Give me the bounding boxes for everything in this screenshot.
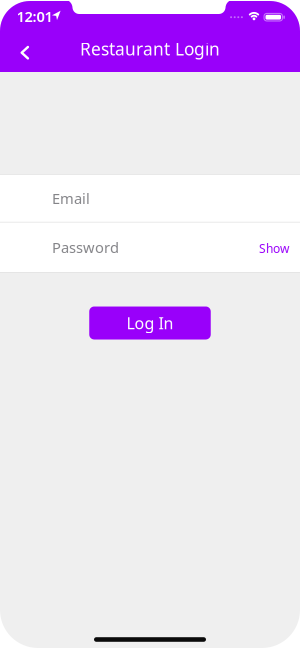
button[interactable]: Email	[0, 175, 300, 222]
button[interactable]: Back	[8, 37, 42, 69]
button[interactable]: Log In	[89, 306, 211, 339]
button[interactable]: Password	[0, 223, 259, 272]
staticText: Show	[259, 240, 289, 256]
button[interactable]: Show	[259, 223, 300, 272]
staticText: Log In	[126, 312, 173, 334]
staticText: Password	[52, 238, 119, 257]
staticText: Restaurant Login	[80, 37, 220, 60]
staticText: Email	[52, 189, 90, 208]
staticText: 12:01	[16, 6, 52, 26]
